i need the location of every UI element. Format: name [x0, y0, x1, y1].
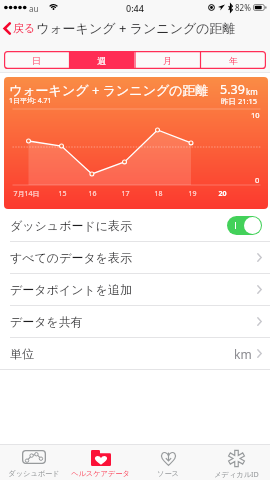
button[interactable]: 月: [134, 51, 200, 69]
staticText: 日: [32, 55, 41, 66]
staticText: 年: [229, 55, 238, 66]
staticText: 15: [58, 189, 67, 199]
staticText: 0:44: [126, 2, 144, 14]
staticText: ウォーキング + ランニングの距離: [9, 81, 209, 99]
staticText: データを共有: [10, 314, 83, 329]
staticText: 月: [163, 55, 172, 66]
staticText: 17: [121, 189, 130, 199]
button[interactable]: ソース: [134, 445, 202, 480]
button[interactable]: メディカルID: [202, 445, 270, 480]
button[interactable]: ヘルスケアデータ: [67, 445, 134, 480]
button[interactable]: 戻る: [0, 21, 39, 35]
staticText: 18: [154, 189, 163, 199]
staticText: ソース: [157, 469, 179, 478]
button[interactable]: データポイントを追加: [0, 274, 270, 305]
staticText: 82%: [235, 2, 251, 13]
button[interactable]: Show on Dashboard toggle: [227, 216, 262, 235]
staticText: km: [246, 86, 258, 97]
staticText: ウォーキング + ランニングの距離: [36, 19, 236, 37]
staticText: メディカルID: [214, 469, 259, 479]
button[interactable]: 単位: [0, 338, 270, 369]
button[interactable]: 日: [4, 51, 69, 69]
button[interactable]: 週: [69, 51, 134, 69]
staticText: 7月14日: [13, 189, 40, 199]
button[interactable]: 年: [200, 51, 266, 69]
staticText: 16: [88, 189, 97, 199]
staticText: すべてのデータを表示: [10, 250, 132, 265]
staticText: 19: [188, 189, 197, 199]
staticText: 1日平均: 4.71: [9, 96, 52, 106]
staticText: 0: [255, 175, 260, 185]
staticText: データポイントを追加: [10, 282, 132, 297]
staticText: 戻る: [13, 21, 36, 35]
button[interactable]: ダッシュボードに表示: [0, 209, 270, 241]
staticText: 10: [251, 110, 260, 120]
staticText: 昨日 21:15: [221, 96, 258, 106]
staticText: au: [29, 3, 39, 14]
button[interactable]: ダッシュボード: [0, 445, 67, 480]
staticText: ダッシュボード: [8, 469, 60, 478]
staticText: 5.39: [220, 81, 245, 98]
staticText: ダッシュボードに表示: [10, 218, 132, 233]
button[interactable]: データを共有: [0, 306, 270, 337]
button[interactable]: すべてのデータを表示: [0, 242, 270, 273]
staticText: ヘルスケアデータ: [71, 469, 130, 478]
staticText: 20: [218, 189, 227, 199]
staticText: km: [234, 346, 252, 362]
staticText: 単位: [10, 346, 34, 361]
staticText: 週: [97, 55, 106, 66]
